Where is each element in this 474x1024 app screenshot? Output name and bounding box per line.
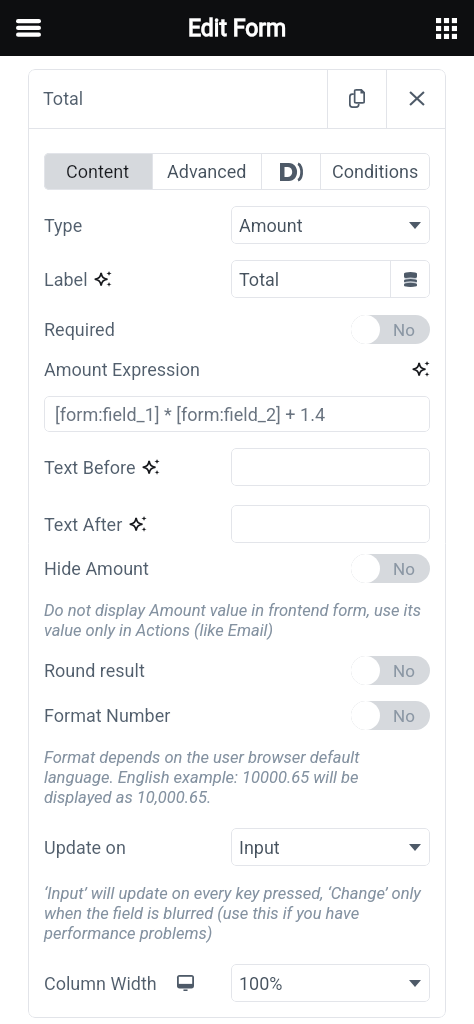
- staticText: No: [393, 320, 415, 340]
- staticText: 100%: [239, 973, 283, 994]
- staticText: [form:field_1] * [form:field_2] + 1.4: [55, 404, 325, 425]
- staticText: No: [393, 661, 415, 681]
- button[interactable]: Amount: [231, 206, 430, 244]
- button[interactable]: Menu: [5, 5, 51, 51]
- button[interactable]: Close: [387, 69, 446, 128]
- button[interactable]: Logic: [262, 153, 320, 190]
- staticText: Update on: [44, 837, 126, 858]
- button[interactable]: [231, 448, 430, 486]
- staticText: Amount: [239, 215, 303, 236]
- staticText: Text Before: [44, 457, 136, 478]
- staticText: Round result: [44, 660, 145, 681]
- button[interactable]: [form:field_1] * [form:field_2] + 1.4: [44, 396, 430, 432]
- staticText: Advanced: [167, 161, 247, 182]
- staticText: Conditions: [332, 161, 419, 182]
- staticText: ‘Input’ will update on every key pressed…: [44, 884, 422, 943]
- button[interactable]: Content: [44, 153, 152, 190]
- button[interactable]: Duplicate: [328, 69, 386, 128]
- staticText: Format Number: [44, 705, 171, 726]
- button[interactable]: No: [351, 701, 430, 730]
- staticText: Do not display Amount value in frontend …: [44, 601, 422, 640]
- staticText: Required: [44, 319, 115, 340]
- button[interactable]: Conditions: [321, 153, 430, 190]
- staticText: Amount Expression: [44, 359, 200, 380]
- staticText: Format depends on the user browser defau…: [44, 748, 422, 807]
- button[interactable]: Insert field: [391, 260, 430, 298]
- staticText: No: [393, 706, 415, 726]
- button[interactable]: [231, 505, 430, 543]
- button[interactable]: 100%: [231, 964, 430, 1002]
- staticText: Total: [43, 88, 84, 109]
- button[interactable]: No: [351, 656, 430, 685]
- staticText: Total: [239, 269, 280, 290]
- button[interactable]: Input: [231, 828, 430, 866]
- staticText: Hide Amount: [44, 558, 149, 579]
- staticText: Content: [66, 161, 130, 182]
- button[interactable]: Advanced: [153, 153, 261, 190]
- staticText: Label: [44, 269, 88, 290]
- staticText: Edit Form: [188, 15, 287, 42]
- staticText: No: [393, 559, 415, 579]
- staticText: Type: [44, 215, 83, 236]
- button[interactable]: Apps: [423, 5, 469, 51]
- staticText: Text After: [44, 514, 123, 535]
- button[interactable]: No: [351, 315, 430, 344]
- staticText: Column Width: [44, 973, 157, 994]
- button[interactable]: No: [351, 554, 430, 583]
- staticText: Input: [239, 837, 280, 858]
